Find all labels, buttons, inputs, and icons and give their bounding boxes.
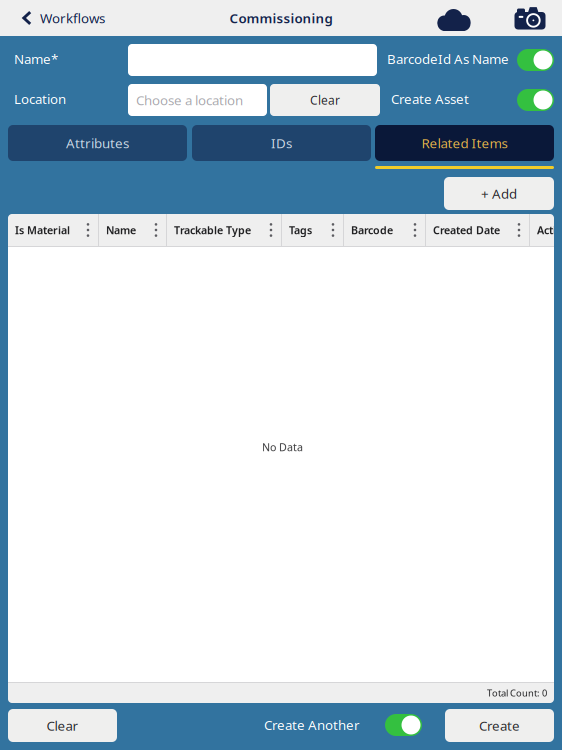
staticText: Total Count: 0 <box>487 687 547 699</box>
button[interactable]: Cloud sync <box>403 0 498 36</box>
button[interactable]: IDs <box>192 125 371 161</box>
button[interactable]: Scan barcode with camera <box>498 0 562 36</box>
button[interactable]: Barcode column options <box>411 223 419 237</box>
staticText: IDs <box>271 134 292 152</box>
button[interactable]: Actions <box>537 223 562 237</box>
button[interactable]: Tags column options <box>329 223 337 237</box>
button[interactable]: Related Items <box>375 125 554 161</box>
button[interactable]: Is Material <box>15 223 70 237</box>
staticText: + Add <box>481 185 517 202</box>
staticText: Tags <box>289 223 312 237</box>
staticText: Barcode <box>351 223 393 237</box>
button[interactable]: Created Date column options <box>515 223 523 237</box>
staticText: Trackable Type <box>174 223 251 237</box>
staticText: Actions <box>537 223 562 237</box>
staticText: Location <box>14 90 66 108</box>
staticText: Clear <box>310 92 340 108</box>
button[interactable]: + Add <box>444 177 554 210</box>
button[interactable]: Workflows <box>0 0 119 36</box>
button[interactable]: Clear <box>270 84 380 116</box>
button[interactable]: Create <box>445 709 554 742</box>
button[interactable]: BarcodeId As Name <box>517 49 554 71</box>
button[interactable]: Barcode <box>351 223 393 237</box>
staticText: Create Asset <box>391 90 469 108</box>
button[interactable]: Is Material column options <box>84 223 92 237</box>
button[interactable]: Name column options <box>152 223 160 237</box>
button[interactable]: Attributes <box>8 125 187 161</box>
staticText: Created Date <box>433 223 500 237</box>
staticText: Create <box>479 717 520 734</box>
staticText: Name <box>106 223 136 237</box>
staticText: BarcodeId As Name <box>387 50 509 68</box>
staticText: Clear <box>46 717 78 734</box>
staticText: Related Items <box>421 134 507 152</box>
button[interactable]: Create Asset <box>517 89 554 111</box>
staticText: No Data <box>262 440 303 454</box>
button[interactable]: Trackable Type column options <box>267 223 275 237</box>
staticText: Attributes <box>66 134 129 152</box>
staticText: Choose a location <box>136 91 243 109</box>
button[interactable]: Name <box>106 223 136 237</box>
button[interactable]: Created Date <box>433 223 500 237</box>
staticText: Is Material <box>15 223 70 237</box>
staticText: Workflows <box>40 9 105 27</box>
button[interactable]: Trackable Type <box>174 223 251 237</box>
button[interactable]: Create Another <box>385 714 422 736</box>
button[interactable]: Tags <box>289 223 312 237</box>
button[interactable]: Clear <box>8 709 117 742</box>
staticText: Create Another <box>264 716 360 734</box>
staticText: Commissioning <box>229 9 332 27</box>
staticText: Name* <box>14 50 58 68</box>
